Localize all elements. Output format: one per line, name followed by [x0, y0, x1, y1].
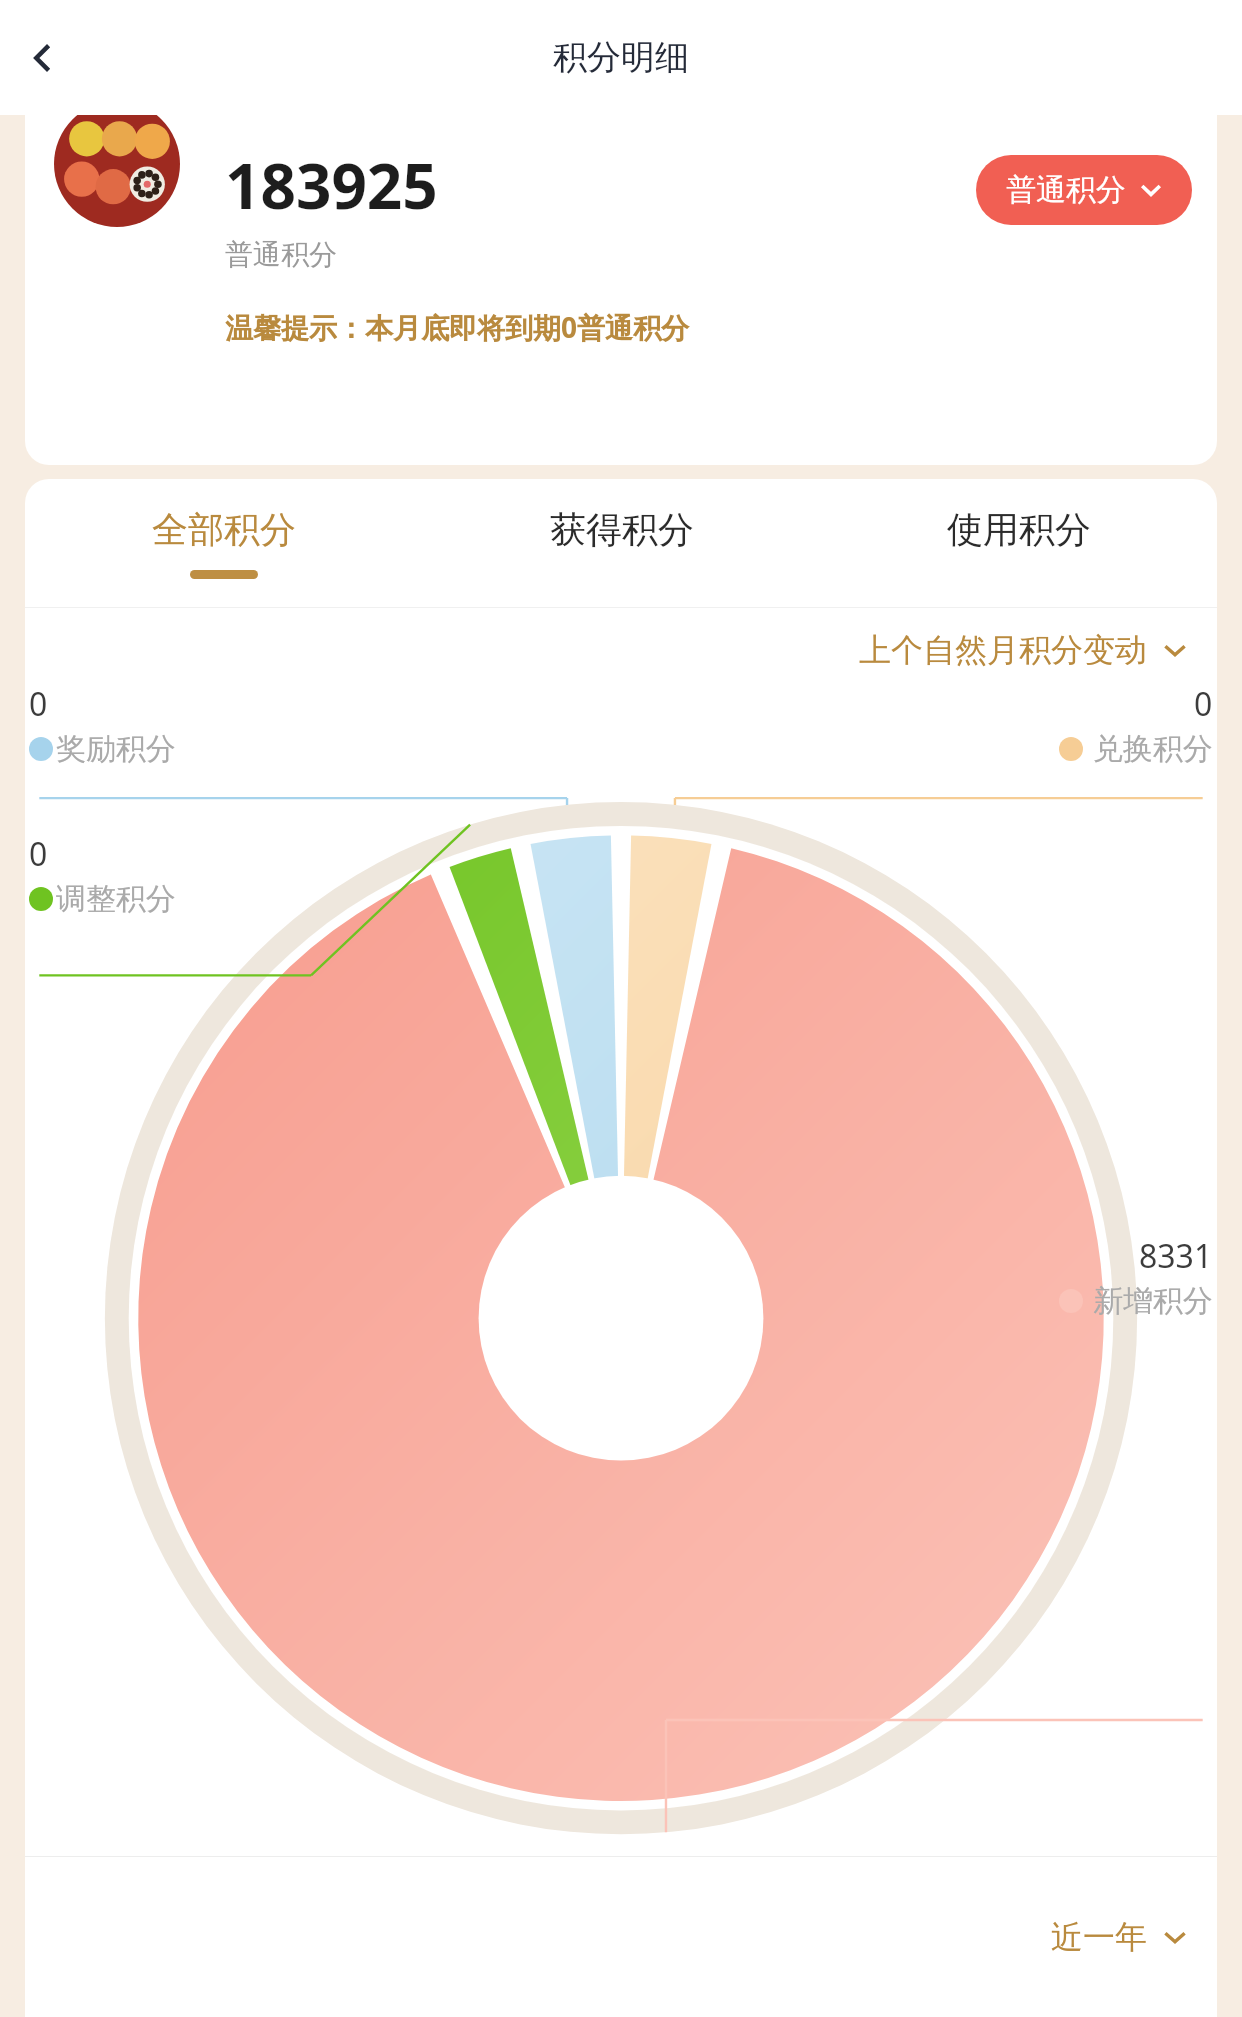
staticText: 奖励积分	[56, 730, 176, 768]
staticText: 8331	[1139, 1234, 1213, 1278]
staticText: 新增积分	[1093, 1282, 1213, 1320]
button[interactable]: 获得积分	[423, 479, 820, 607]
button[interactable]: 普通积分	[976, 155, 1192, 225]
button[interactable]: 使用积分	[820, 479, 1217, 607]
staticText: 调整积分	[56, 880, 176, 918]
staticText: 0	[29, 682, 48, 726]
staticText: 普通积分	[1006, 171, 1126, 209]
staticText: 温馨提示：本月底即将到期0普通积分	[225, 308, 690, 346]
button[interactable]: 全部积分	[25, 479, 423, 607]
staticText: 0	[29, 832, 48, 876]
button[interactable]: 上个自然月积分变动	[25, 630, 1187, 670]
staticText: 普通积分	[225, 237, 337, 272]
staticText: 使用积分	[947, 507, 1091, 552]
staticText: 近一年	[1051, 1917, 1147, 1957]
staticText: 183925	[225, 143, 438, 227]
staticText: 上个自然月积分变动	[859, 630, 1147, 670]
staticText: 积分明细	[553, 36, 689, 79]
staticText: 0	[1194, 682, 1213, 726]
button[interactable]: Back	[12, 27, 74, 89]
staticText: 获得积分	[550, 507, 694, 552]
staticText: 全部积分	[152, 507, 296, 552]
staticText: 兑换积分	[1093, 730, 1213, 768]
button[interactable]: 近一年	[25, 1857, 1187, 2017]
